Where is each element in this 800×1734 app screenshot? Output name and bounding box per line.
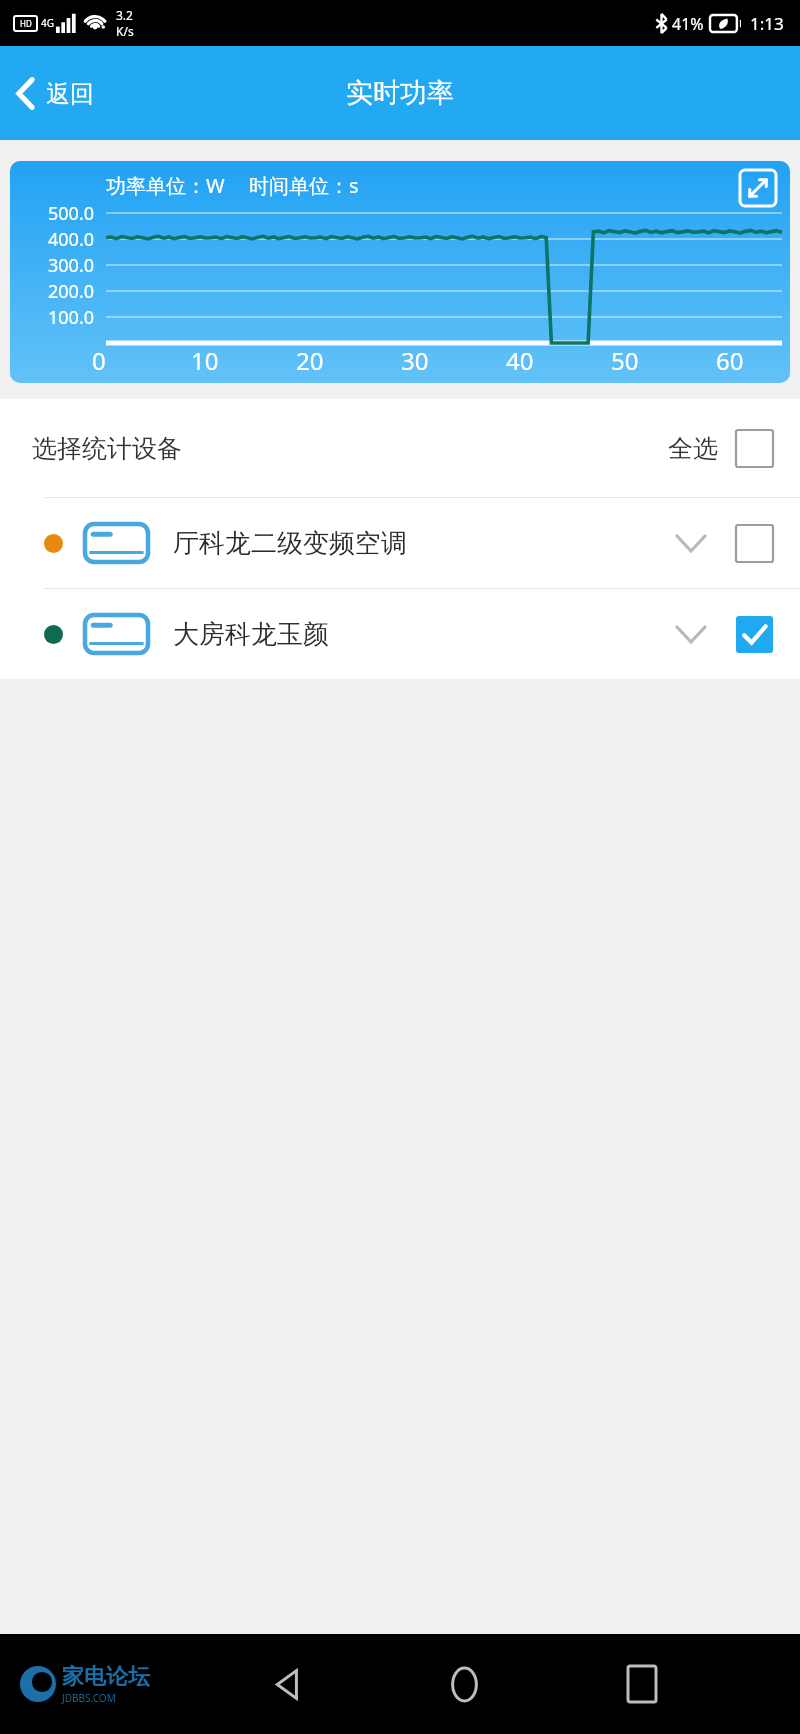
staticText: 4G — [41, 16, 54, 30]
button[interactable]: Expand — [668, 520, 714, 566]
button[interactable]: Select — [734, 614, 774, 654]
staticText: 400.0 — [10, 227, 94, 252]
staticText: 40 — [506, 344, 534, 377]
staticText: 实时功率 — [346, 76, 454, 110]
staticText: 厅科龙二级变频空调 — [173, 527, 407, 560]
staticText: 0 — [92, 344, 106, 377]
staticText: 41% — [672, 13, 704, 35]
staticText: 1:13 — [750, 12, 784, 35]
staticText: 全选 — [668, 433, 718, 464]
button[interactable]: 返回 — [0, 65, 114, 122]
staticText: 10 — [191, 344, 219, 377]
staticText: 时间单位：s — [249, 172, 359, 199]
button[interactable]: Expand — [668, 611, 714, 657]
staticText: 60 — [716, 344, 744, 377]
button[interactable]: Select — [734, 523, 774, 563]
staticText: JDBBS.COM — [62, 1691, 116, 1705]
button[interactable]: Back — [200, 1634, 376, 1734]
button[interactable]: 大房科龙玉颜 — [0, 589, 800, 679]
staticText: 200.0 — [10, 279, 94, 304]
button[interactable]: 全选 — [668, 418, 774, 478]
staticText: 大房科龙玉颜 — [173, 618, 329, 651]
staticText: 500.0 — [10, 201, 94, 226]
staticText: 选择统计设备 — [32, 433, 182, 464]
button[interactable]: 厅科龙二级变频空调 — [0, 498, 800, 588]
staticText: 3.2 — [116, 7, 133, 23]
staticText: K/s — [116, 23, 134, 39]
staticText: 300.0 — [10, 253, 94, 278]
button[interactable]: Home — [376, 1634, 553, 1734]
button[interactable]: Recents — [553, 1634, 730, 1734]
staticText: HD — [20, 18, 32, 29]
button[interactable]: Select — [734, 428, 774, 468]
staticText: 50 — [611, 344, 639, 377]
staticText: 家电论坛 — [62, 1663, 150, 1691]
staticText: 返回 — [46, 79, 94, 109]
staticText: 30 — [401, 344, 429, 377]
button[interactable]: Fullscreen — [740, 170, 776, 206]
staticText: 20 — [296, 344, 324, 377]
staticText: 100.0 — [10, 305, 94, 330]
staticText: 功率单位：W — [106, 172, 225, 199]
